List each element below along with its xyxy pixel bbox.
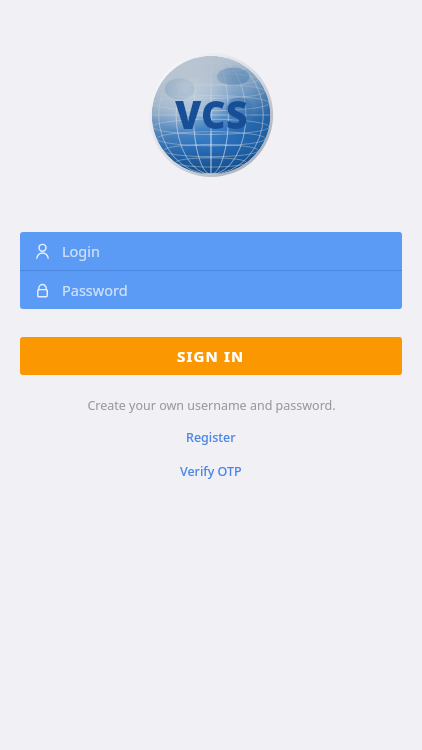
- staticText: Create your own username and password.: [87, 397, 336, 414]
- staticText: Verify OTP: [180, 463, 242, 480]
- staticText: Password: [62, 280, 128, 300]
- button[interactable]: SIGN IN: [20, 337, 402, 375]
- staticText: SIGN IN: [177, 346, 245, 366]
- other: VCS logo: [147, 51, 275, 179]
- staticText: VCS: [175, 88, 248, 140]
- button[interactable]: Login: [20, 232, 402, 270]
- button[interactable]: Verify OTP: [170, 461, 252, 482]
- staticText: Login: [62, 241, 100, 261]
- button[interactable]: Register: [176, 427, 246, 448]
- button[interactable]: Password: [20, 271, 402, 309]
- staticText: Register: [186, 429, 236, 446]
